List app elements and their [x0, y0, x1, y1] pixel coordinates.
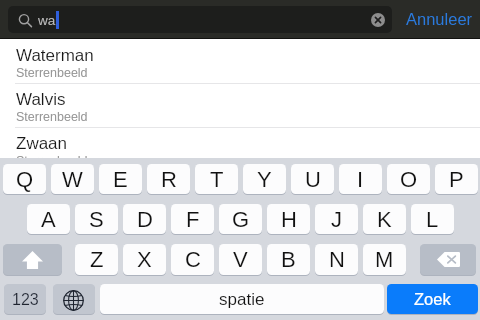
staticText: D: [137, 207, 153, 232]
staticText: J: [331, 207, 342, 232]
button[interactable]: K: [363, 204, 406, 234]
staticText: T: [210, 167, 224, 192]
button[interactable]: P: [435, 164, 478, 194]
button[interactable]: U: [291, 164, 334, 194]
staticText: H: [281, 207, 297, 232]
button[interactable]: W: [51, 164, 94, 194]
button[interactable]: H: [267, 204, 310, 234]
button[interactable]: Switch keyboard: [53, 284, 95, 314]
staticText: Sterrenbeeld: [16, 154, 88, 168]
staticText: Q: [16, 167, 34, 192]
button[interactable]: J: [315, 204, 358, 234]
button[interactable]: S: [75, 204, 118, 234]
button[interactable]: Clear text: [371, 13, 385, 27]
staticText: O: [400, 167, 418, 192]
button[interactable]: Walvis: [0, 84, 480, 128]
button[interactable]: Y: [243, 164, 286, 194]
staticText: F: [186, 207, 200, 232]
staticText: N: [329, 247, 345, 272]
staticText: U: [305, 167, 321, 192]
staticText: Waterman: [16, 46, 94, 65]
button[interactable]: O: [387, 164, 430, 194]
staticText: R: [161, 167, 177, 192]
staticText: L: [426, 207, 439, 232]
staticText: W: [62, 167, 83, 192]
staticText: P: [449, 167, 464, 192]
staticText: V: [233, 247, 248, 272]
staticText: Sterrenbeeld: [16, 66, 88, 80]
staticText: K: [377, 207, 392, 232]
button[interactable]: Annuleer: [396, 0, 480, 39]
staticText: X: [137, 247, 152, 272]
button[interactable]: B: [267, 244, 310, 275]
staticText: wa: [38, 13, 56, 28]
staticText: Annuleer: [406, 10, 473, 28]
button[interactable]: Zoek: [387, 284, 478, 314]
staticText: E: [113, 167, 128, 192]
button[interactable]: Z: [75, 244, 118, 275]
button[interactable]: E: [99, 164, 142, 194]
staticText: I: [357, 167, 364, 192]
button[interactable]: L: [411, 204, 454, 234]
button[interactable]: Q: [3, 164, 46, 194]
button[interactable]: Numbers: [4, 284, 46, 314]
button[interactable]: Shift: [3, 244, 62, 275]
staticText: A: [41, 207, 56, 232]
staticText: C: [185, 247, 201, 272]
staticText: Y: [257, 167, 272, 192]
staticText: Zoek: [414, 290, 451, 308]
button[interactable]: Backspace: [420, 244, 476, 275]
staticText: S: [89, 207, 104, 232]
button[interactable]: spatie: [100, 284, 384, 314]
button[interactable]: R: [147, 164, 190, 194]
button[interactable]: A: [27, 204, 70, 234]
button[interactable]: F: [171, 204, 214, 234]
button[interactable]: C: [171, 244, 214, 275]
button[interactable]: Search: [8, 6, 392, 33]
button[interactable]: V: [219, 244, 262, 275]
staticText: spatie: [219, 290, 265, 309]
button[interactable]: Zwaan: [0, 128, 480, 172]
button[interactable]: T: [195, 164, 238, 194]
staticText: Walvis: [16, 90, 66, 109]
button[interactable]: M: [363, 244, 406, 275]
button[interactable]: D: [123, 204, 166, 234]
staticText: Zwaan: [16, 134, 68, 153]
staticText: Z: [90, 247, 104, 272]
staticText: Sterrenbeeld: [16, 110, 88, 124]
staticText: G: [232, 207, 250, 232]
button[interactable]: X: [123, 244, 166, 275]
staticText: 123: [12, 291, 39, 309]
button[interactable]: N: [315, 244, 358, 275]
staticText: M: [375, 247, 394, 272]
button[interactable]: G: [219, 204, 262, 234]
button[interactable]: I: [339, 164, 382, 194]
other: Search: [16, 6, 34, 33]
staticText: B: [281, 247, 296, 272]
button[interactable]: Waterman: [0, 40, 480, 84]
